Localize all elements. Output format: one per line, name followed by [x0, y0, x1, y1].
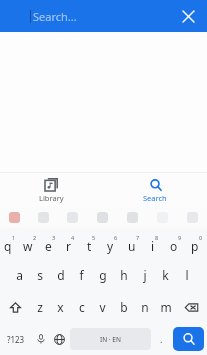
staticText: d [57, 267, 65, 283]
button[interactable]: x [50, 291, 71, 323]
button[interactable]: s [29, 259, 50, 291]
button[interactable]: d [50, 259, 71, 291]
button[interactable]: a [9, 259, 29, 291]
staticText: f [79, 267, 84, 283]
button[interactable]: IN · EN [70, 328, 151, 350]
button[interactable]: r [60, 228, 81, 259]
staticText: Search [143, 193, 167, 203]
staticText: g [99, 267, 107, 283]
staticText: l [185, 267, 189, 283]
staticText: IN · EN [100, 335, 121, 344]
staticText: 1 [12, 234, 16, 241]
button[interactable]: k [155, 259, 176, 291]
button[interactable]: e [40, 228, 60, 259]
staticText: n [141, 299, 149, 315]
button[interactable]: g [92, 259, 113, 291]
button[interactable]: t [81, 228, 102, 259]
button[interactable]: ?123 [0, 323, 32, 355]
button[interactable]: Close search [175, 3, 201, 29]
staticText: Library [39, 193, 64, 203]
staticText: y [107, 238, 114, 254]
staticText: c [79, 299, 85, 315]
button[interactable]: i [144, 228, 165, 259]
button[interactable]: f [71, 259, 92, 291]
button[interactable]: Shift [0, 291, 30, 323]
button[interactable]: Backspace [176, 291, 207, 323]
staticText: z [37, 299, 43, 315]
staticText: q [4, 238, 12, 254]
button[interactable]: Search [103, 173, 207, 207]
staticText: 7 [136, 234, 140, 241]
staticText: ?123 [7, 334, 25, 345]
staticText: Search... [33, 9, 77, 24]
staticText: b [120, 299, 128, 315]
staticText: v [99, 299, 106, 315]
staticText: p [191, 238, 199, 254]
staticText: r [66, 238, 71, 254]
staticText: 3 [52, 234, 56, 241]
staticText: 0 [199, 234, 203, 241]
button[interactable]: q [0, 228, 20, 259]
button[interactable]: y [102, 228, 123, 259]
staticText: e [45, 238, 52, 254]
button[interactable]: c [71, 291, 92, 323]
button[interactable]: o [165, 228, 186, 259]
button[interactable]: j [134, 259, 155, 291]
button[interactable]: . [153, 323, 170, 355]
staticText: 6 [114, 234, 118, 241]
staticText: u [128, 238, 136, 254]
staticText: x [57, 299, 64, 315]
staticText: . [160, 333, 163, 345]
button[interactable]: u [123, 228, 144, 259]
staticText: 9 [178, 234, 182, 241]
button[interactable]: b [113, 291, 134, 323]
staticText: a [16, 267, 23, 283]
button[interactable]: Search [173, 327, 204, 351]
staticText: k [162, 267, 169, 283]
button[interactable]: z [30, 291, 50, 323]
staticText: 8 [155, 234, 159, 241]
staticText: w [23, 238, 33, 254]
button[interactable]: n [134, 291, 155, 323]
button[interactable]: v [92, 291, 113, 323]
staticText: 2 [33, 234, 37, 241]
button[interactable]: w [20, 228, 40, 259]
button[interactable]: Voice input [32, 323, 50, 355]
staticText: t [87, 238, 92, 254]
button[interactable]: l [176, 259, 197, 291]
button[interactable]: Library [0, 173, 103, 207]
staticText: 5 [92, 234, 96, 241]
staticText: m [160, 299, 172, 315]
staticText: i [151, 238, 155, 254]
staticText: 4 [71, 234, 75, 241]
staticText: j [143, 267, 147, 283]
button[interactable]: m [155, 291, 176, 323]
staticText: o [170, 238, 178, 254]
staticText: h [120, 267, 128, 283]
button[interactable]: Change language [50, 323, 68, 355]
staticText: s [37, 267, 43, 283]
button[interactable]: p [186, 228, 207, 259]
button[interactable]: h [113, 259, 134, 291]
